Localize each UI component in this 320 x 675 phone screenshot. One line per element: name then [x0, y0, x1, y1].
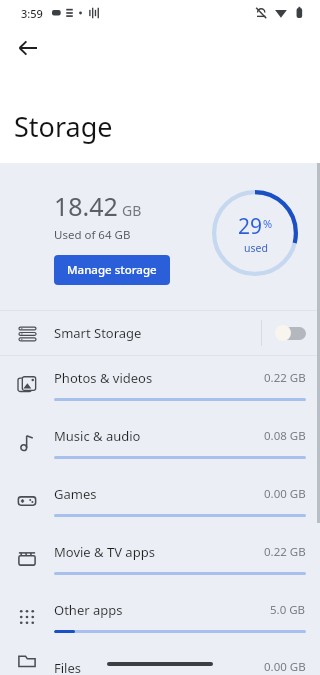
staticText: Photos & videos: [54, 369, 264, 387]
staticText: 0.22 GB: [264, 544, 306, 560]
button[interactable]: Games: [0, 472, 320, 530]
staticText: Movie & TV apps: [54, 543, 264, 561]
staticText: 18.42: [54, 189, 118, 223]
staticText: 3:59: [21, 6, 43, 21]
staticText: used: [244, 241, 268, 255]
button[interactable]: Smart Storage: [0, 311, 320, 355]
button[interactable]: Music & audio: [0, 414, 320, 472]
staticText: 0.00 GB: [264, 486, 306, 502]
staticText: 5.0 GB: [270, 602, 306, 618]
staticText: 0.22 GB: [264, 370, 306, 386]
staticText: Games: [54, 485, 264, 503]
staticText: Used of 64 GB: [54, 227, 131, 243]
staticText: Manage storage: [67, 262, 157, 278]
staticText: Smart Storage: [54, 324, 261, 342]
staticText: Other apps: [54, 601, 270, 619]
button[interactable]: Files: [0, 646, 320, 675]
button[interactable]: Back: [8, 28, 48, 68]
staticText: 29: [238, 212, 263, 241]
button[interactable]: Movie & TV apps: [0, 530, 320, 588]
staticText: 0.00 GB: [264, 659, 306, 675]
staticText: Music & audio: [54, 427, 264, 445]
button[interactable]: Other apps: [0, 588, 320, 646]
staticText: Storage: [14, 108, 113, 145]
staticText: 0.08 GB: [264, 428, 306, 444]
staticText: %: [263, 216, 273, 231]
button[interactable]: Smart Storage toggle: [262, 311, 320, 355]
staticText: Files: [54, 659, 264, 675]
button[interactable]: Photos & videos: [0, 356, 320, 414]
button[interactable]: Manage storage: [54, 255, 170, 285]
staticText: GB: [122, 201, 142, 220]
